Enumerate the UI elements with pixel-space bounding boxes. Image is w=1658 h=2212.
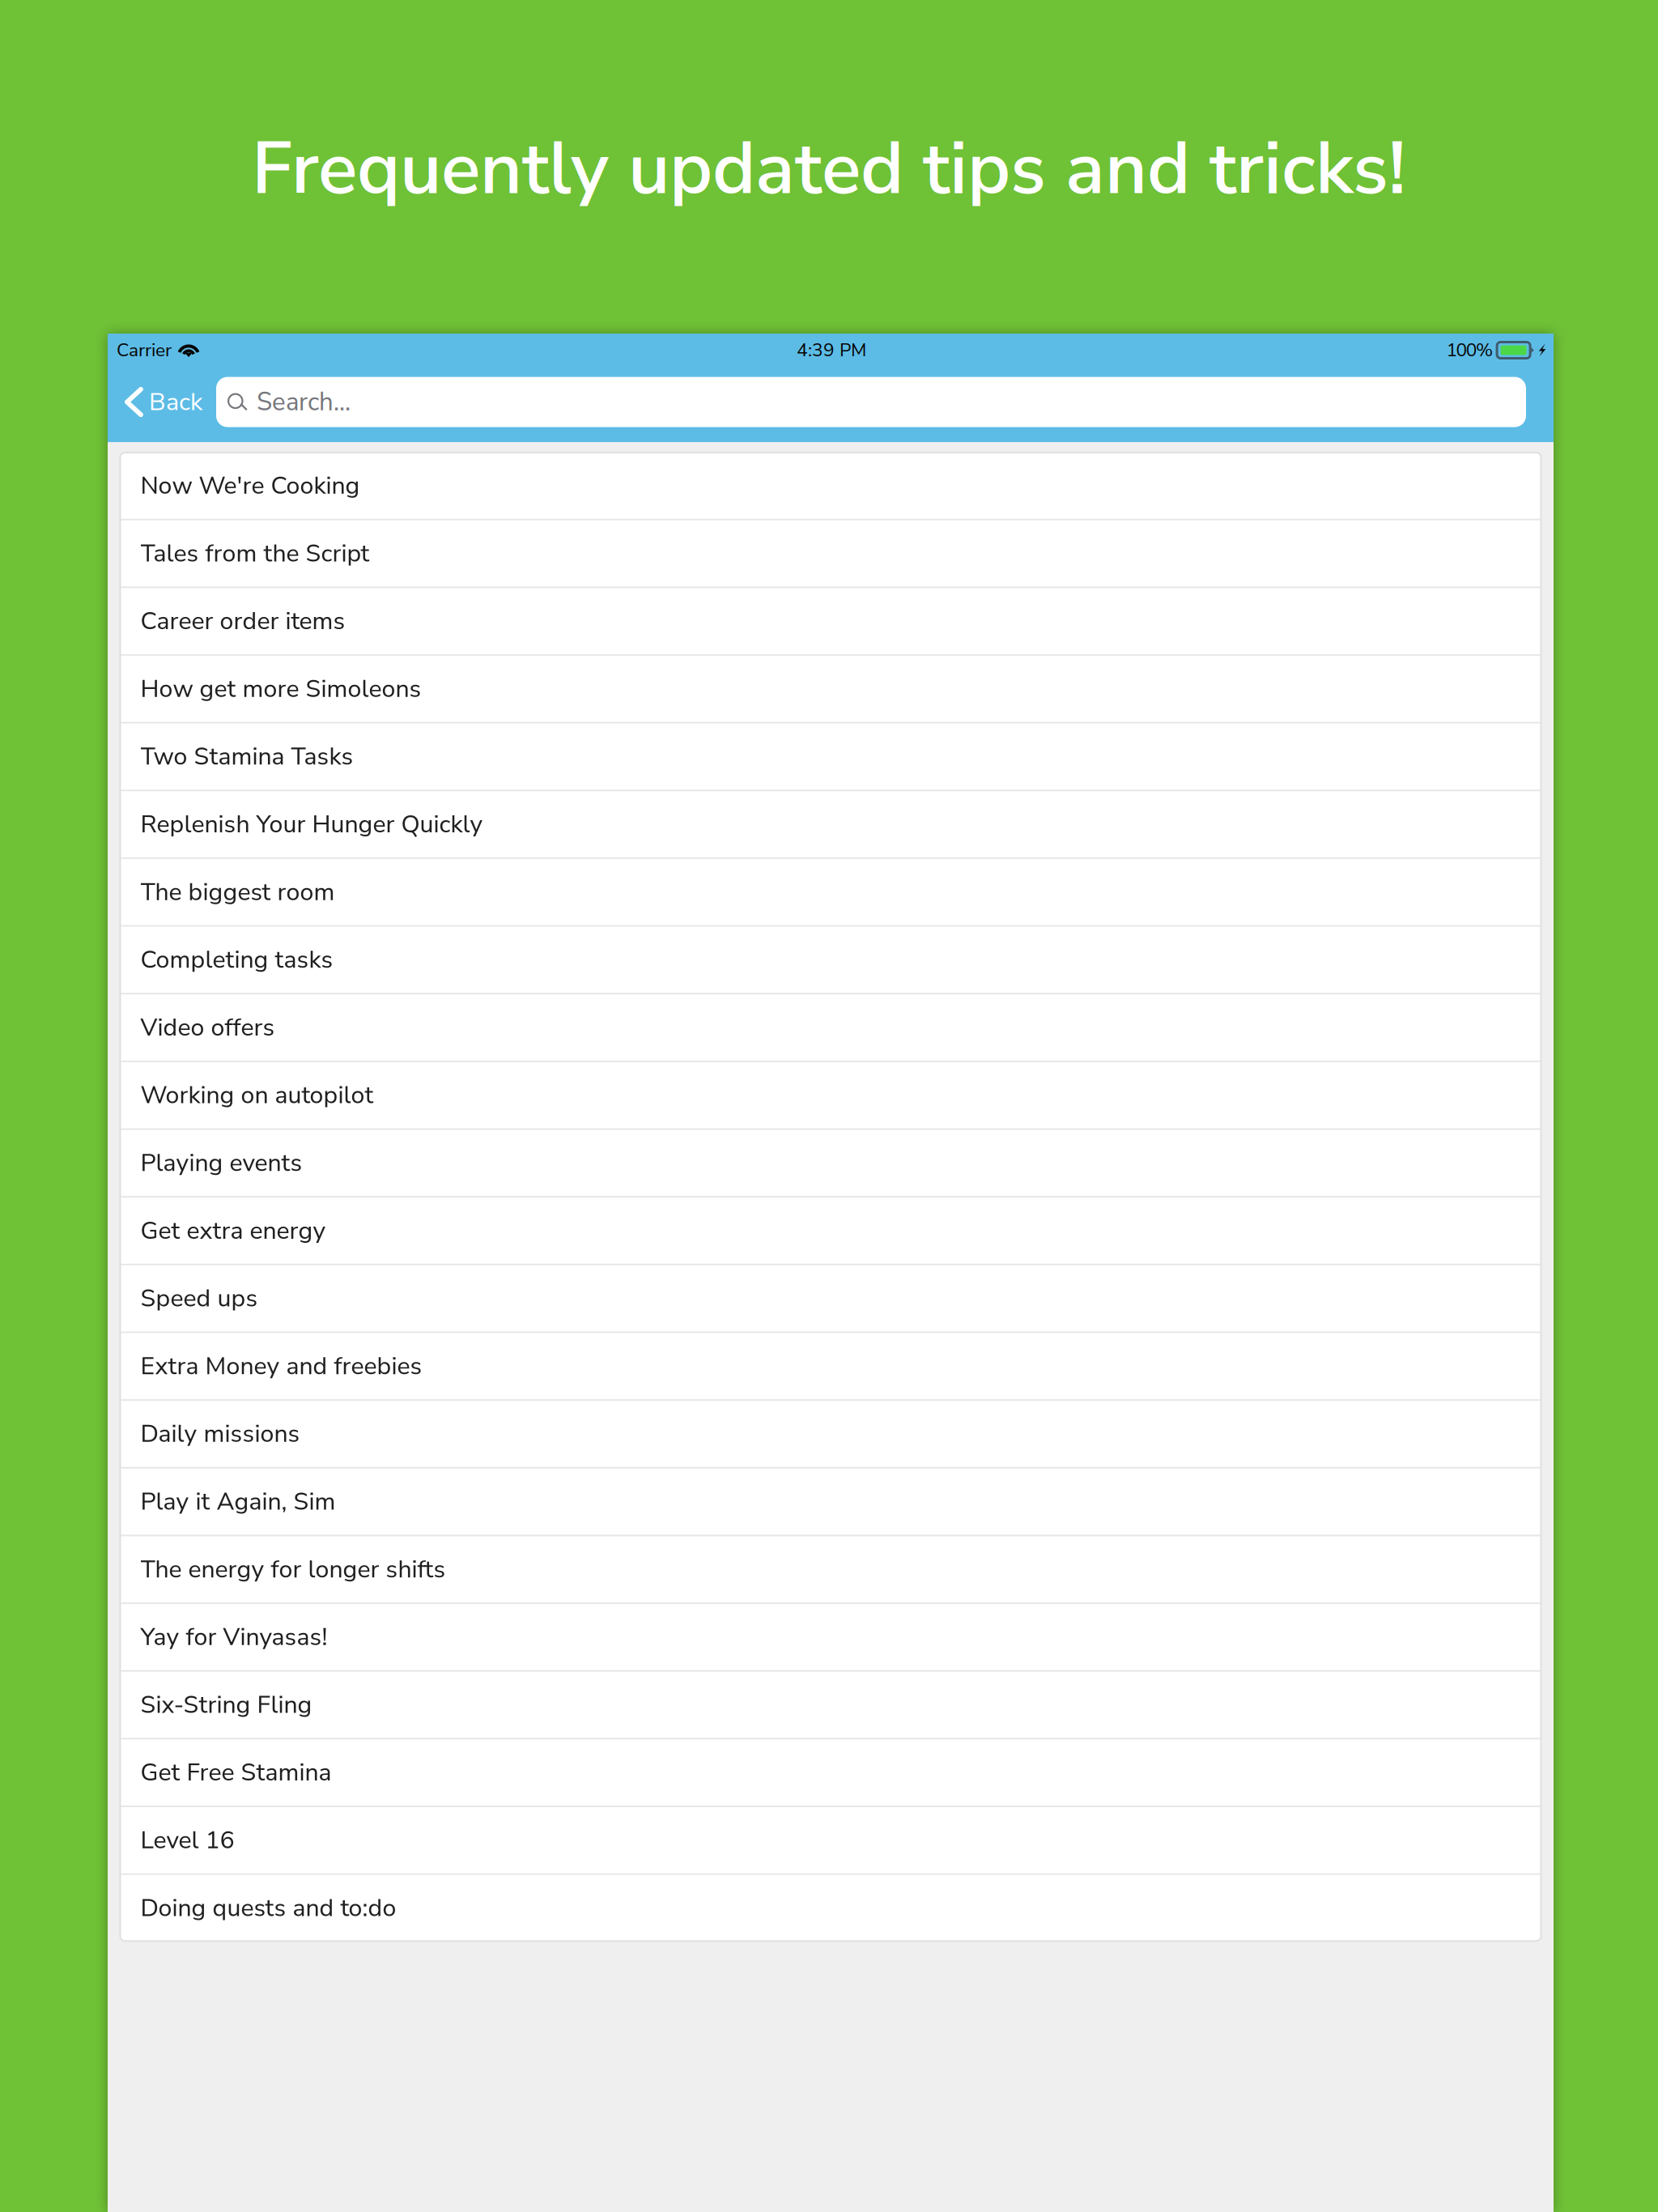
- staticText: Video offers: [140, 1011, 275, 1044]
- button[interactable]: Tales from the Script: [120, 520, 1541, 586]
- staticText: Speed ups: [140, 1282, 258, 1315]
- button[interactable]: How get more Simoleons: [120, 656, 1541, 722]
- staticText: Search...: [257, 385, 351, 419]
- button[interactable]: Get Free Stamina: [120, 1739, 1541, 1806]
- staticText: Working on autopilot: [140, 1079, 374, 1112]
- staticText: Replenish Your Hunger Quickly: [140, 808, 483, 841]
- staticText: Get extra energy: [140, 1214, 326, 1247]
- button[interactable]: Search...: [216, 377, 1526, 427]
- button[interactable]: Now We're Cooking: [120, 453, 1541, 519]
- button[interactable]: The biggest room: [120, 859, 1541, 925]
- staticText: Play it Again, Sim: [140, 1485, 336, 1518]
- button[interactable]: Replenish Your Hunger Quickly: [120, 791, 1541, 857]
- staticText: Daily missions: [140, 1417, 300, 1451]
- staticText: Two Stamina Tasks: [140, 740, 353, 773]
- staticText: Completing tasks: [140, 943, 333, 976]
- button[interactable]: Six-String Fling: [120, 1672, 1541, 1738]
- staticText: 100%: [1446, 338, 1493, 363]
- button[interactable]: Two Stamina Tasks: [120, 724, 1541, 790]
- button[interactable]: Video offers: [120, 994, 1541, 1061]
- staticText: Get Free Stamina: [140, 1756, 332, 1789]
- staticText: Playing events: [140, 1146, 302, 1180]
- button[interactable]: Play it Again, Sim: [120, 1469, 1541, 1535]
- staticText: Frequently updated tips and tricks!: [252, 120, 1406, 219]
- button[interactable]: Extra Money and freebies: [120, 1333, 1541, 1399]
- button[interactable]: Yay for Vinyasas!: [120, 1604, 1541, 1670]
- staticText: The energy for longer shifts: [140, 1553, 446, 1586]
- staticText: Back: [149, 385, 202, 419]
- staticText: Now We're Cooking: [140, 469, 360, 502]
- button[interactable]: Speed ups: [120, 1265, 1541, 1331]
- staticText: Doing quests and to:do: [140, 1891, 396, 1925]
- button[interactable]: Get extra energy: [120, 1198, 1541, 1264]
- button[interactable]: Doing quests and to:do: [120, 1875, 1541, 1941]
- staticText: The biggest room: [140, 875, 335, 909]
- staticText: Career order items: [140, 604, 345, 638]
- button[interactable]: Playing events: [120, 1130, 1541, 1196]
- staticText: Tales from the Script: [140, 537, 370, 570]
- staticText: 4:39 PM: [797, 338, 866, 363]
- staticText: Carrier: [117, 338, 172, 363]
- button[interactable]: Level 16: [120, 1807, 1541, 1873]
- button[interactable]: Daily missions: [120, 1401, 1541, 1467]
- staticText: Level 16: [140, 1824, 234, 1857]
- button[interactable]: Career order items: [120, 588, 1541, 654]
- staticText: Six-String Fling: [140, 1688, 312, 1721]
- staticText: How get more Simoleons: [140, 672, 421, 705]
- button[interactable]: The energy for longer shifts: [120, 1536, 1541, 1602]
- button[interactable]: Working on autopilot: [120, 1062, 1541, 1128]
- staticText: Yay for Vinyasas!: [140, 1620, 327, 1654]
- button[interactable]: Completing tasks: [120, 927, 1541, 993]
- button[interactable]: Back: [108, 369, 216, 435]
- staticText: Extra Money and freebies: [140, 1349, 422, 1383]
